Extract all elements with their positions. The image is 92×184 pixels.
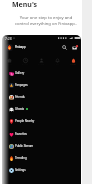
staticText: Settings (15, 168, 26, 172)
button[interactable]: Alerts (49, 57, 65, 69)
button[interactable]: Trends (65, 57, 81, 69)
button[interactable]: Search (60, 43, 69, 52)
staticText: Public Stream (15, 144, 34, 148)
staticText: 7:28 (5, 36, 12, 41)
staticText: Ghosts (15, 107, 25, 111)
staticText: Finixapp (15, 45, 26, 49)
staticText: Menu's (12, 0, 38, 10)
staticText: Gallery (15, 71, 25, 75)
staticText: Trending (15, 156, 27, 160)
staticText: Trends (70, 63, 77, 66)
staticText: People Nearby (15, 119, 35, 123)
button[interactable]: Messages (70, 43, 79, 52)
staticText: Home (7, 63, 13, 66)
button[interactable]: Public Stream (2, 140, 81, 152)
button[interactable]: People (33, 57, 49, 69)
button[interactable]: People Nearby (2, 115, 81, 127)
staticText: Your one step to enjoy and control every… (6, 15, 86, 27)
button[interactable]: Ghosts (2, 103, 81, 115)
button[interactable]: Fanpages (2, 79, 81, 91)
button[interactable]: Trending (2, 152, 81, 164)
button[interactable]: Recent (17, 57, 33, 69)
staticText: Friends (15, 95, 25, 99)
staticText: Fanpages (15, 83, 28, 87)
button[interactable]: Friends (2, 91, 81, 103)
staticText: Favorites (15, 132, 27, 136)
button[interactable]: Favorites (2, 128, 81, 140)
button[interactable]: Settings (2, 164, 81, 176)
button[interactable]: Gallery (2, 67, 81, 79)
button[interactable]: Home (2, 57, 17, 69)
